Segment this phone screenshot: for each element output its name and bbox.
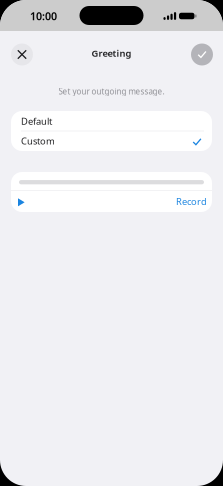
staticText: Record	[176, 195, 207, 207]
button[interactable]: Default	[11, 112, 212, 131]
button[interactable]: Done	[191, 43, 213, 65]
staticText: 10:00	[30, 9, 57, 23]
button[interactable]: Custom	[11, 131, 212, 150]
staticText: Greeting	[91, 47, 131, 59]
button[interactable]: Record	[176, 195, 207, 207]
staticText: Set your outgoing message.	[58, 86, 164, 97]
button[interactable]: Close	[11, 43, 33, 65]
staticText: Custom	[21, 135, 55, 147]
button[interactable]: Play	[18, 196, 25, 206]
staticText: Default	[21, 115, 52, 127]
